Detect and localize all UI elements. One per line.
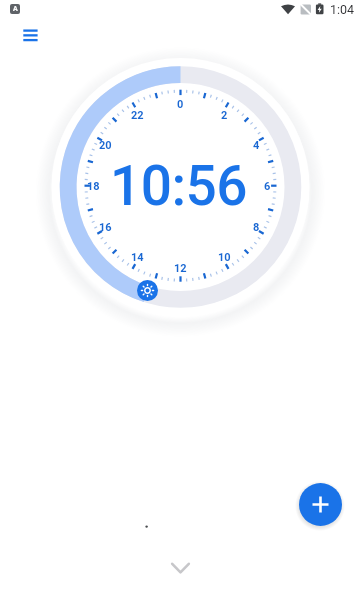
- button[interactable]: [137, 280, 158, 301]
- button[interactable]: [13, 18, 47, 52]
- staticText: 12: [174, 262, 187, 275]
- staticText: 6: [264, 180, 271, 193]
- staticText: 22: [131, 109, 144, 122]
- button[interactable]: [299, 483, 342, 526]
- staticText: 10:56: [110, 154, 248, 218]
- staticText: 1:04: [330, 2, 355, 17]
- staticText: 20: [99, 139, 112, 152]
- staticText: 16: [99, 221, 112, 234]
- staticText: 4: [253, 139, 260, 152]
- staticText: 8: [253, 221, 260, 234]
- staticText: 18: [87, 180, 100, 193]
- staticText: 2: [221, 109, 228, 122]
- staticText: A: [13, 5, 18, 13]
- staticText: 14: [131, 251, 144, 264]
- staticText: 0: [177, 98, 184, 111]
- staticText: 10: [218, 251, 231, 264]
- button[interactable]: [160, 552, 200, 584]
